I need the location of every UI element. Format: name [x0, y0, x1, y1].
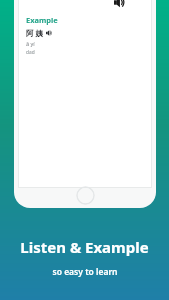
staticText: Listen & Example [20, 237, 149, 257]
button[interactable]: Home [76, 186, 95, 205]
button[interactable]: Play example [26, 28, 52, 38]
staticText: 阿 姨 [26, 28, 43, 38]
staticText: dad [26, 49, 35, 56]
staticText: Example [26, 15, 58, 25]
staticText: so easy to learn [52, 266, 118, 278]
button[interactable]: Play pronunciation [112, 0, 126, 9]
staticText: ā yí [26, 40, 35, 47]
